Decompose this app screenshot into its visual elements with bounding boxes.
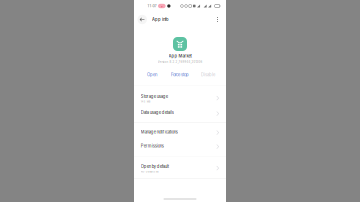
staticText: No defaults set bbox=[141, 170, 159, 173]
button[interactable]: Manage notifications bbox=[134, 123, 226, 140]
staticText: 11:07 bbox=[147, 4, 156, 8]
button[interactable]: Open bbox=[144, 70, 159, 79]
staticText: Disable bbox=[201, 72, 215, 77]
staticText: Open bbox=[147, 72, 157, 77]
button[interactable]: More options bbox=[215, 16, 220, 23]
button[interactable]: Data usage details bbox=[134, 106, 226, 122]
staticText: App info bbox=[152, 17, 168, 22]
button[interactable]: Force stop bbox=[168, 70, 191, 79]
button[interactable]: Back bbox=[137, 15, 147, 24]
staticText: Manage notifications bbox=[141, 129, 178, 134]
button[interactable]: Storage usage bbox=[134, 85, 226, 106]
staticText: Force stop bbox=[171, 72, 189, 77]
staticText: Version 8.2.2_769944_201306 bbox=[157, 60, 202, 64]
staticText: Storage usage bbox=[141, 94, 168, 99]
staticText: Permissions bbox=[141, 143, 164, 148]
staticText: App Market bbox=[168, 54, 191, 59]
staticText: 145 MB bbox=[141, 100, 151, 103]
staticText: Open by default bbox=[141, 164, 169, 169]
button[interactable]: Open by default bbox=[134, 156, 226, 178]
staticText: Data usage details bbox=[141, 110, 174, 115]
button[interactable]: Permissions bbox=[134, 140, 226, 156]
button[interactable]: Disable bbox=[198, 70, 217, 79]
